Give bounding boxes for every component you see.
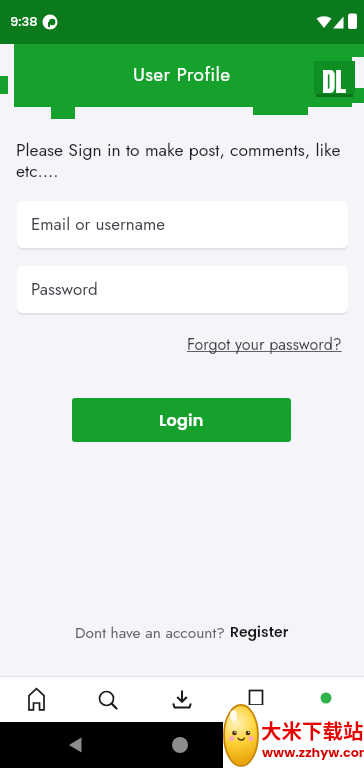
- staticText: DL: [322, 61, 347, 94]
- staticText: Please Sign in to make post, comments, l…: [16, 137, 352, 184]
- button[interactable]: Forgot your password?: [187, 333, 342, 356]
- staticText: User Profile: [133, 61, 231, 88]
- staticText: Email or username: [31, 212, 165, 237]
- staticText: Password: [31, 277, 98, 302]
- button[interactable]: [122, 722, 243, 768]
- button[interactable]: Register: [230, 622, 289, 642]
- staticText: Login: [159, 409, 204, 431]
- button[interactable]: DL: [314, 61, 355, 94]
- button[interactable]: 大米下载站: [261, 715, 364, 745]
- button[interactable]: Login: [72, 398, 291, 442]
- staticText: www.zzhyw.com: [262, 744, 364, 762]
- button[interactable]: [0, 676, 72, 722]
- button[interactable]: [291, 676, 364, 722]
- button[interactable]: [145, 676, 218, 722]
- button[interactable]: Email or username: [17, 201, 348, 248]
- button[interactable]: [72, 676, 145, 722]
- button[interactable]: [0, 722, 122, 768]
- button[interactable]: [243, 722, 364, 768]
- staticText: Dont have an account?: [75, 621, 230, 643]
- button[interactable]: Password: [17, 266, 348, 313]
- staticText: 9:38: [10, 12, 38, 30]
- button[interactable]: [218, 676, 291, 722]
